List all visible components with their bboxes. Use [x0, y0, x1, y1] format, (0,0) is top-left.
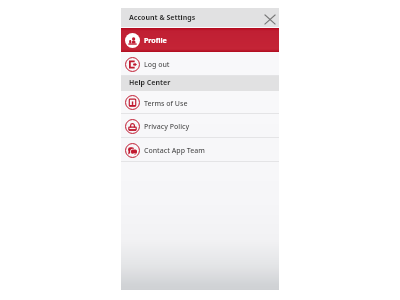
button[interactable]: Terms of Use: [121, 91, 279, 114]
button[interactable]: Log out: [121, 52, 279, 76]
button[interactable]: Privacy Policy: [121, 114, 279, 138]
staticText: Help Center: [129, 78, 171, 88]
staticText: Privacy Policy: [144, 122, 190, 132]
button[interactable]: Contact App Team: [121, 138, 279, 162]
button[interactable]: Close: [260, 8, 279, 27]
staticText: Account & Settings: [129, 13, 196, 23]
staticText: Contact App Team: [144, 146, 205, 156]
staticText: Terms of Use: [144, 99, 188, 109]
staticText: Log out: [144, 60, 170, 70]
button[interactable]: Profile: [121, 28, 279, 52]
staticText: Profile: [144, 36, 167, 46]
